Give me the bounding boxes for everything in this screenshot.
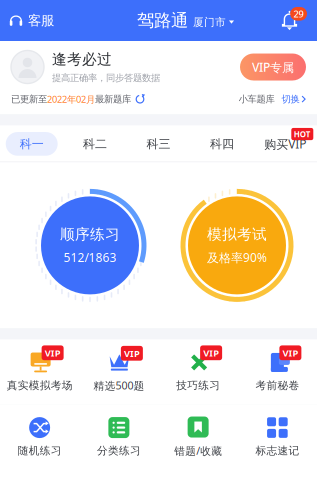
staticText: VIP专属: [252, 59, 294, 75]
staticText: 购买VIP: [264, 136, 306, 152]
button[interactable]: Refresh: [131, 94, 145, 104]
staticText: 逢考必过: [52, 50, 112, 68]
button[interactable]: 切换: [274, 93, 306, 105]
staticText: 小车题库: [238, 93, 274, 105]
button[interactable]: 科四: [190, 132, 254, 156]
staticText: 科二: [83, 136, 107, 151]
staticText: 考前秘卷: [255, 379, 299, 392]
staticText: 精选500题: [93, 378, 144, 393]
staticText: 标志速记: [255, 444, 299, 457]
button[interactable]: VIP: [158, 352, 238, 392]
staticText: 提高正确率，同步答题数据: [52, 72, 160, 84]
button[interactable]: 科三: [127, 132, 190, 156]
staticText: VIP: [124, 347, 140, 359]
staticText: 最新题库: [95, 93, 131, 105]
staticText: VIP: [45, 347, 61, 359]
button[interactable]: VIP: [79, 351, 158, 393]
staticText: 顺序练习: [60, 225, 120, 243]
button[interactable]: 顺序练习: [32, 187, 148, 303]
staticText: 厦门市: [193, 15, 226, 29]
button[interactable]: 厦门市: [193, 15, 234, 31]
button[interactable]: VIP: [0, 352, 79, 392]
staticText: 随机练习: [18, 444, 62, 457]
staticText: 科三: [146, 136, 170, 151]
staticText: 已更新至: [11, 93, 47, 105]
button[interactable]: 随机练习: [0, 417, 79, 457]
staticText: HOT: [294, 129, 311, 139]
button[interactable]: 错题/收藏: [158, 417, 238, 458]
staticText: VIP: [203, 347, 219, 359]
button[interactable]: 科一: [0, 132, 63, 156]
staticText: 技巧练习: [176, 379, 220, 392]
staticText: 2022年02月: [47, 93, 95, 105]
staticText: 真实模拟考场: [7, 379, 73, 392]
button[interactable]: Notifications: [281, 5, 317, 36]
button[interactable]: 购买VIP: [254, 130, 317, 158]
button[interactable]: VIP专属: [240, 53, 306, 80]
staticText: 科一: [20, 136, 44, 151]
staticText: 错题/收藏: [174, 444, 222, 458]
button[interactable]: 模拟考试: [179, 187, 295, 303]
button[interactable]: 客服: [0, 4, 54, 37]
staticText: 512/1863: [63, 249, 116, 265]
staticText: 分类练习: [97, 444, 141, 457]
staticText: VIP: [282, 347, 298, 359]
button[interactable]: 标志速记: [238, 417, 317, 457]
staticText: 客服: [28, 12, 54, 29]
button[interactable]: VIP: [238, 352, 317, 392]
staticText: 切换: [281, 93, 299, 105]
button[interactable]: 分类练习: [79, 417, 158, 457]
staticText: 29: [294, 8, 304, 20]
staticText: 科四: [210, 136, 234, 151]
button[interactable]: 科二: [63, 132, 127, 156]
staticText: 及格率90%: [207, 249, 267, 265]
staticText: 模拟考试: [207, 225, 267, 243]
staticText: 驾路通: [137, 10, 188, 31]
